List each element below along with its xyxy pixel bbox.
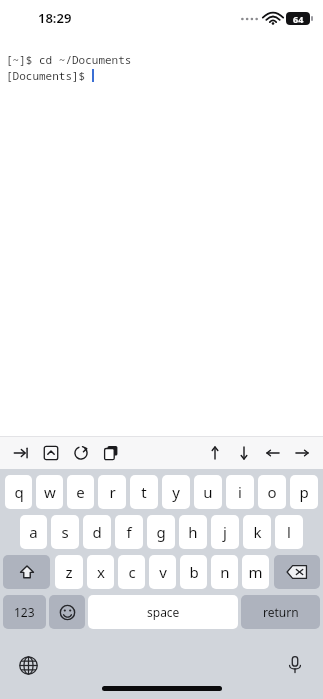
staticText: u: [203, 482, 213, 502]
button[interactable]: u: [194, 475, 222, 509]
button[interactable]: p: [290, 475, 318, 509]
button[interactable]: x: [87, 555, 114, 589]
staticText: e: [76, 482, 85, 502]
staticText: q: [14, 482, 24, 502]
button[interactable]: z: [55, 555, 83, 589]
staticText: f: [126, 522, 132, 542]
button[interactable]: return: [241, 595, 320, 629]
staticText: 64: [293, 13, 304, 25]
staticText: a: [29, 522, 38, 542]
staticText: w: [44, 482, 56, 502]
staticText: m: [248, 562, 263, 582]
button[interactable]: Shift: [3, 555, 50, 589]
button[interactable]: j: [211, 515, 239, 549]
staticText: l: [287, 522, 291, 542]
button[interactable]: g: [147, 515, 175, 549]
button[interactable]: h: [179, 515, 207, 549]
staticText: j: [223, 522, 227, 542]
button[interactable]: Emoji: [49, 595, 85, 629]
button[interactable]: d: [83, 515, 111, 549]
staticText: 123: [14, 604, 35, 620]
staticText: t: [141, 482, 147, 502]
button[interactable]: c: [118, 555, 145, 589]
button[interactable]: [~]$ cd ~/Documents: [0, 40, 323, 436]
button[interactable]: s: [51, 515, 79, 549]
button[interactable]: m: [242, 555, 269, 589]
staticText: space: [147, 604, 180, 620]
staticText: c: [128, 562, 136, 582]
staticText: s: [61, 522, 69, 542]
staticText: return: [263, 604, 299, 620]
button[interactable]: f: [115, 515, 143, 549]
button[interactable]: space: [88, 595, 238, 629]
button[interactable]: b: [180, 555, 207, 589]
button[interactable]: y: [162, 475, 190, 509]
staticText: g: [156, 522, 166, 542]
staticText: i: [238, 482, 242, 502]
button[interactable]: k: [243, 515, 271, 549]
button[interactable]: r: [98, 475, 126, 509]
button[interactable]: Tab: [10, 442, 32, 464]
staticText: x: [97, 562, 105, 582]
staticText: v: [159, 562, 167, 582]
button[interactable]: w: [36, 475, 63, 509]
button[interactable]: Backspace: [274, 555, 320, 589]
button[interactable]: Control: [40, 442, 62, 464]
button[interactable]: Arrow left: [262, 442, 284, 464]
staticText: [Documents]$: [6, 68, 92, 83]
staticText: z: [65, 562, 73, 582]
button[interactable]: q: [5, 475, 32, 509]
button[interactable]: o: [258, 475, 286, 509]
staticText: h: [188, 522, 198, 542]
button[interactable]: l: [275, 515, 303, 549]
staticText: [~]$ cd ~/Documents: [6, 52, 132, 67]
button[interactable]: i: [226, 475, 254, 509]
button[interactable]: e: [67, 475, 94, 509]
button[interactable]: a: [20, 515, 47, 549]
button[interactable]: Dictation: [281, 651, 309, 679]
button[interactable]: v: [149, 555, 176, 589]
button[interactable]: 123: [3, 595, 46, 629]
button[interactable]: Change keyboard: [14, 651, 42, 679]
staticText: r: [109, 482, 116, 502]
button[interactable]: Arrow up: [204, 442, 226, 464]
staticText: y: [172, 482, 180, 502]
button[interactable]: Arrow down: [233, 442, 255, 464]
button[interactable]: Arrow right: [291, 442, 313, 464]
staticText: o: [267, 482, 277, 502]
button[interactable]: Paste: [100, 442, 122, 464]
staticText: d: [92, 522, 102, 542]
staticText: k: [253, 522, 262, 542]
button[interactable]: n: [211, 555, 238, 589]
staticText: p: [299, 482, 309, 502]
button[interactable]: Undo: [70, 442, 92, 464]
button[interactable]: t: [130, 475, 158, 509]
staticText: 18:29: [38, 9, 72, 27]
staticText: n: [220, 562, 230, 582]
staticText: b: [189, 562, 199, 582]
